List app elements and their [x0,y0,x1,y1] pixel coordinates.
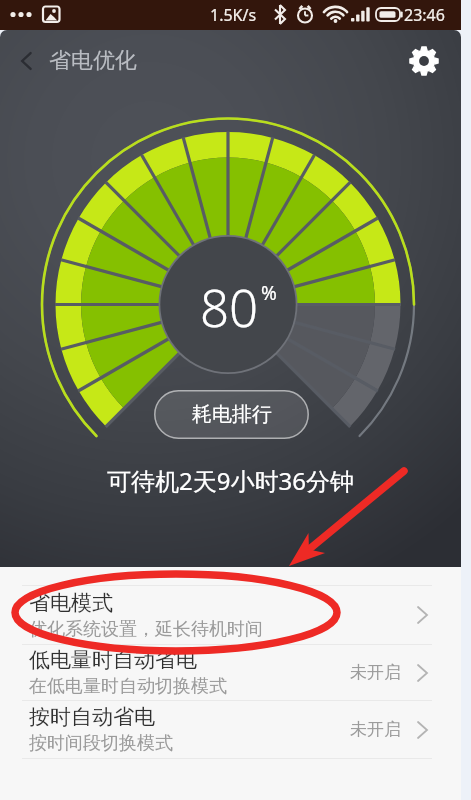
button[interactable]: Back [8,42,46,80]
staticText: 优化系统设置，延长待机时间 [29,618,263,641]
staticText: 按时自动省电 [29,704,155,730]
staticText: 耗电排行 [192,402,272,427]
button[interactable]: 低电量时自动省电 [0,645,461,700]
button[interactable]: 按时自动省电 [0,701,461,758]
staticText: 低电量时自动省电 [29,647,197,673]
staticText: 省电模式 [29,590,113,616]
staticText: 1.5K/s [210,4,257,26]
staticText: 80 [200,272,259,341]
staticText: % [261,280,277,306]
staticText: 省电优化 [49,47,137,75]
staticText: 23:46 [404,4,445,26]
button[interactable]: 耗电排行 [154,390,309,439]
button[interactable]: 省电模式 [0,586,461,644]
staticText: 可待机2天9小时36分钟 [0,464,461,497]
staticText: 未开启 [350,662,401,683]
staticText: 按时间段切换模式 [29,732,173,755]
staticText: 未开启 [350,719,401,740]
staticText: 在低电量时自动切换模式 [29,675,227,698]
button[interactable]: Settings [404,41,444,81]
